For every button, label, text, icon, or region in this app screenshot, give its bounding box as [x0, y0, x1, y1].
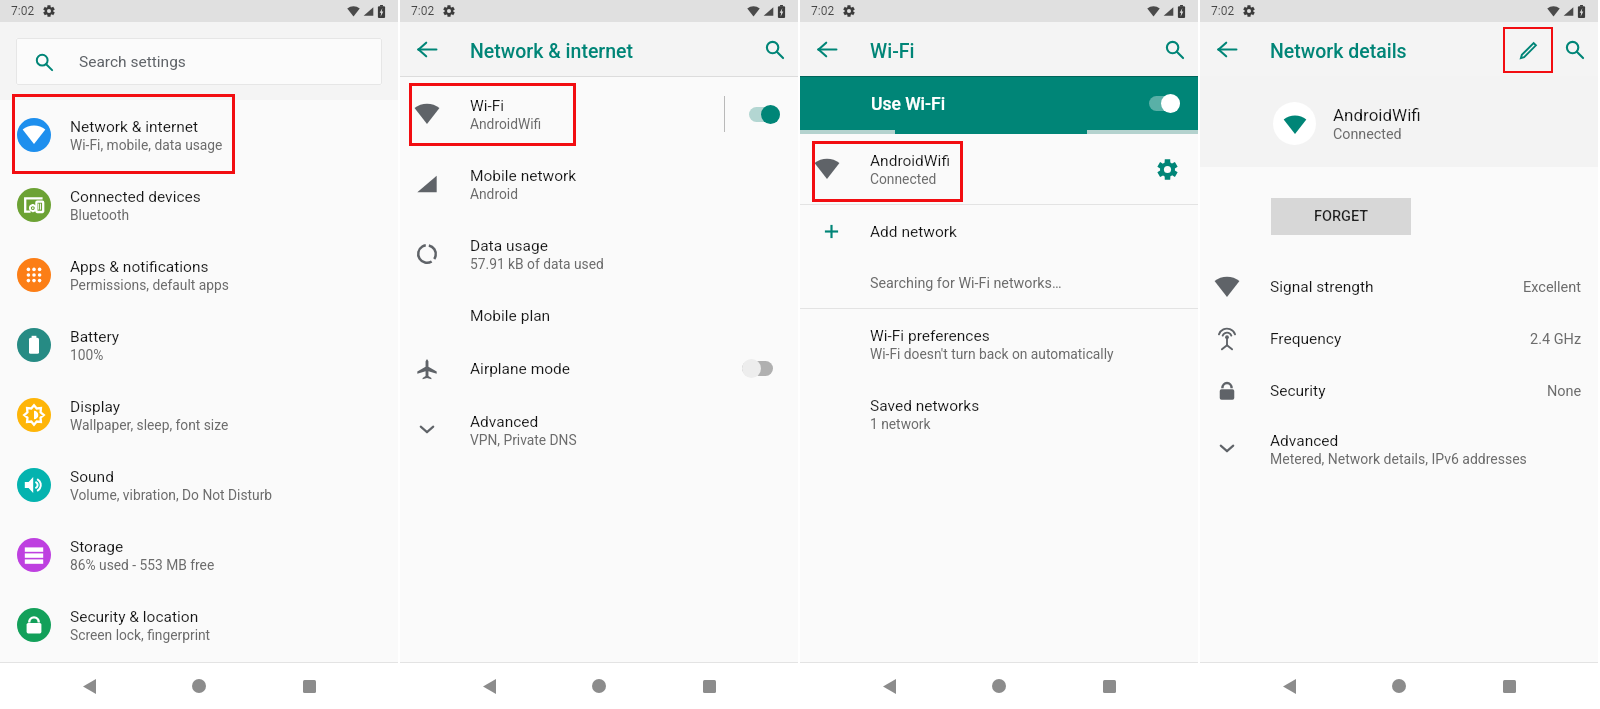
staticText: Wi-Fi doesn't turn back on automatically [870, 346, 1114, 362]
staticText: Wi-Fi [870, 40, 915, 63]
button[interactable]: Search [1159, 34, 1189, 64]
button[interactable]: Signal strength [1200, 261, 1598, 313]
staticText: Data usage [470, 237, 548, 255]
button[interactable]: AndroidWifi [800, 134, 1198, 204]
staticText: Security [1270, 382, 1547, 400]
staticText: Signal strength [1270, 278, 1523, 296]
staticText: Wi-Fi, mobile, data usage [70, 137, 223, 153]
button[interactable]: Edit [1503, 27, 1553, 73]
staticText: Mobile plan [470, 307, 551, 325]
staticText: Advanced [470, 413, 539, 431]
staticText: Volume, vibration, Do Not Disturb [70, 487, 273, 503]
button[interactable]: Search [759, 34, 789, 64]
button[interactable]: Advanced [400, 395, 798, 465]
staticText: 7:02 [411, 4, 435, 18]
button[interactable]: Navigate up [413, 35, 441, 63]
button[interactable]: Apps & notifications [0, 240, 398, 310]
button[interactable]: Recent apps [694, 671, 724, 701]
button[interactable]: Search settings [16, 38, 382, 85]
button[interactable]: Mobile network [400, 149, 798, 219]
staticText: Permissions, default apps [70, 277, 229, 293]
button[interactable]: Wi-Fi [400, 79, 798, 149]
button[interactable]: Display [0, 380, 398, 450]
staticText: VPN, Private DNS [470, 432, 577, 448]
staticText: 7:02 [11, 4, 35, 18]
staticText: Searching for Wi-Fi networks… [870, 275, 1062, 292]
staticText: Airplane mode [470, 360, 571, 378]
staticText: Metered, Network details, IPv6 addresses [1270, 451, 1527, 467]
button[interactable]: Recent apps [294, 671, 324, 701]
button[interactable]: Navigate up [1213, 35, 1241, 63]
button[interactable]: Home [984, 671, 1014, 701]
staticText: 7:02 [1211, 4, 1235, 18]
button[interactable]: Connected devices [0, 170, 398, 240]
button[interactable]: Mobile plan [400, 289, 798, 342]
staticText: Sound [70, 468, 114, 486]
staticText: Network & internet [70, 118, 198, 136]
staticText: Display [70, 398, 121, 416]
staticText: Add network [870, 223, 957, 241]
button[interactable]: FORGET [1271, 198, 1411, 235]
staticText: Apps & notifications [70, 258, 209, 276]
button[interactable]: Recent apps [1494, 671, 1524, 701]
staticText: 100% [70, 347, 104, 363]
staticText: Connected devices [70, 188, 201, 206]
button[interactable]: Security & location [0, 590, 398, 660]
staticText: Android [470, 186, 518, 202]
staticText: AndroidWifi [1333, 105, 1421, 125]
button[interactable]: Navigate up [813, 35, 841, 63]
staticText: Connected [870, 171, 937, 187]
staticText: FORGET [1314, 208, 1369, 225]
button[interactable]: Network & internet [0, 100, 398, 170]
button[interactable]: Use Wi-Fi [800, 77, 1198, 130]
button[interactable]: Network settings [1145, 147, 1189, 191]
staticText: Network & internet [470, 40, 634, 63]
button[interactable]: Frequency [1200, 313, 1598, 365]
staticText: Frequency [1270, 330, 1530, 348]
button[interactable]: Wi-Fi preferences [800, 309, 1198, 379]
staticText: Wallpaper, sleep, font size [70, 417, 229, 433]
button[interactable]: Home [584, 671, 614, 701]
staticText: 57.91 kB of data used [470, 256, 604, 272]
button[interactable]: Home [1384, 671, 1414, 701]
button[interactable]: Saved networks [800, 379, 1198, 449]
button[interactable]: Search [1559, 34, 1589, 64]
staticText: 2.4 GHz [1530, 331, 1582, 348]
button[interactable]: Back [474, 671, 504, 701]
button[interactable]: Back [74, 671, 104, 701]
staticText: Saved networks [870, 397, 980, 415]
button[interactable]: Home [184, 671, 214, 701]
staticText: Mobile network [470, 167, 577, 185]
button[interactable]: Recent apps [1094, 671, 1124, 701]
staticText: 1 network [870, 416, 931, 432]
staticText: AndroidWifi [470, 116, 542, 132]
staticText: Wi-Fi preferences [870, 327, 990, 345]
button[interactable]: Advanced [1200, 417, 1598, 481]
button[interactable]: Airplane mode [400, 342, 798, 395]
button[interactable]: Security [1200, 365, 1598, 417]
button[interactable]: Back [1274, 671, 1304, 701]
staticText: Wi-Fi [470, 97, 505, 115]
staticText: Bluetooth [70, 207, 130, 223]
staticText: Security & location [70, 608, 199, 626]
staticText: 7:02 [811, 4, 835, 18]
staticText: 86% used - 553 MB free [70, 557, 215, 573]
staticText: Use Wi-Fi [871, 94, 946, 115]
staticText: Network details [1270, 40, 1407, 63]
button[interactable]: Add network [800, 205, 1198, 258]
staticText: Advanced [1270, 432, 1339, 450]
button[interactable]: Sound [0, 450, 398, 520]
staticText: None [1547, 383, 1582, 400]
button[interactable]: Storage [0, 520, 398, 590]
staticText: Storage [70, 538, 124, 556]
staticText: Battery [70, 328, 120, 346]
staticText: Excellent [1523, 279, 1582, 296]
staticText: Screen lock, fingerprint [70, 627, 211, 643]
button[interactable]: Back [874, 671, 904, 701]
button[interactable]: Data usage [400, 219, 798, 289]
button[interactable]: Battery [0, 310, 398, 380]
staticText: AndroidWifi [870, 152, 950, 170]
staticText: Connected [1333, 126, 1402, 143]
staticText: Search settings [79, 53, 186, 71]
